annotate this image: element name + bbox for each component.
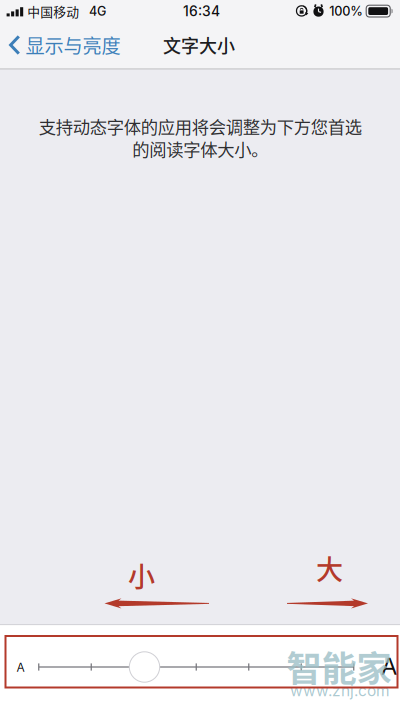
staticText: 小 bbox=[128, 555, 155, 595]
staticText: 100% bbox=[329, 3, 363, 19]
staticText: 16:34 bbox=[183, 3, 220, 19]
staticText: A bbox=[17, 660, 25, 675]
staticText: 显示与亮度 bbox=[25, 31, 120, 59]
staticText: www.znj.com bbox=[290, 681, 390, 700]
staticText: 文字大小 bbox=[163, 32, 235, 58]
staticText: A bbox=[381, 651, 397, 680]
staticText: 大 bbox=[316, 548, 343, 588]
staticText: 中国移动 bbox=[27, 2, 79, 20]
staticText: 4G bbox=[89, 3, 106, 19]
button[interactable]: 返回 显示与亮度 bbox=[0, 23, 140, 67]
staticText: 支持动态字体的应用将会调整为下方您首选的阅读字体大小。 bbox=[38, 115, 361, 160]
staticText: 智能家 bbox=[286, 641, 391, 692]
